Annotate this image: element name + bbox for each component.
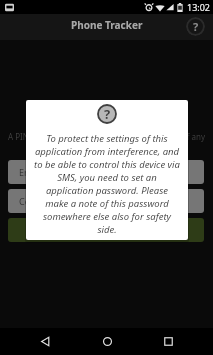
button[interactable]: Enter password [8,160,204,184]
button[interactable]: Confirm password [8,189,204,213]
button[interactable]: Recents [151,328,185,355]
button[interactable]: Help [186,17,205,36]
staticText: A PIN is required to prevent unauthorise… [8,131,206,142]
staticText: ? [193,19,199,34]
staticText: Confirm password [19,195,97,207]
staticText: SAVE [95,224,117,236]
button[interactable]: Home [90,328,124,355]
staticText: Phone Tracker [71,18,143,32]
button[interactable]: Back [28,328,62,355]
staticText: ? [104,105,111,123]
staticText: 13:02 [187,1,211,13]
staticText: Enter password [19,166,85,178]
button[interactable]: SAVE [8,218,204,242]
staticText: To protect the settings of this applicat… [34,132,180,236]
